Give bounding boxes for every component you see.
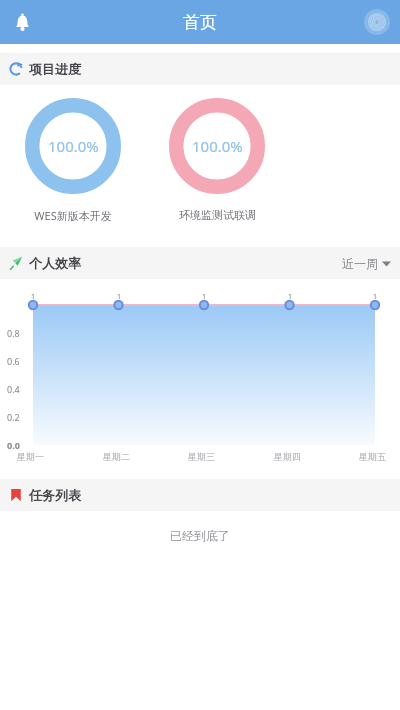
staticText: 1	[373, 292, 378, 302]
staticText: 1	[31, 292, 36, 302]
button[interactable]: Profile	[363, 8, 391, 36]
staticText: 星期二	[103, 451, 130, 462]
staticText: 已经到底了	[170, 528, 230, 543]
button[interactable]: 100.0%	[153, 85, 281, 222]
staticText: 0.6	[7, 355, 20, 367]
staticText: 首页	[183, 12, 217, 33]
staticText: 0.0	[7, 439, 20, 451]
staticText: 0.2	[7, 411, 20, 423]
staticText: 星期五	[359, 451, 386, 462]
staticText: 100.0%	[48, 136, 99, 156]
staticText: 环境监测试联调	[179, 208, 256, 222]
button[interactable]: Notifications	[5, 5, 39, 39]
staticText: 0.8	[7, 327, 20, 339]
staticText: 个人效率	[29, 255, 81, 271]
staticText: 1	[202, 292, 207, 302]
staticText: 100.0%	[192, 136, 243, 156]
staticText: WES新版本开发	[34, 208, 112, 223]
button[interactable]: 近一周	[342, 256, 391, 271]
staticText: 0.4	[7, 383, 20, 395]
staticText: 星期一	[17, 451, 44, 462]
staticText: 近一周	[342, 256, 378, 271]
button[interactable]: 100.0%	[9, 85, 137, 223]
staticText: 项目进度	[29, 61, 81, 77]
staticText: 任务列表	[29, 487, 81, 503]
staticText: 星期三	[188, 451, 215, 462]
staticText: 1	[288, 292, 293, 302]
staticText: 星期四	[274, 451, 301, 462]
staticText: 1	[117, 292, 122, 302]
